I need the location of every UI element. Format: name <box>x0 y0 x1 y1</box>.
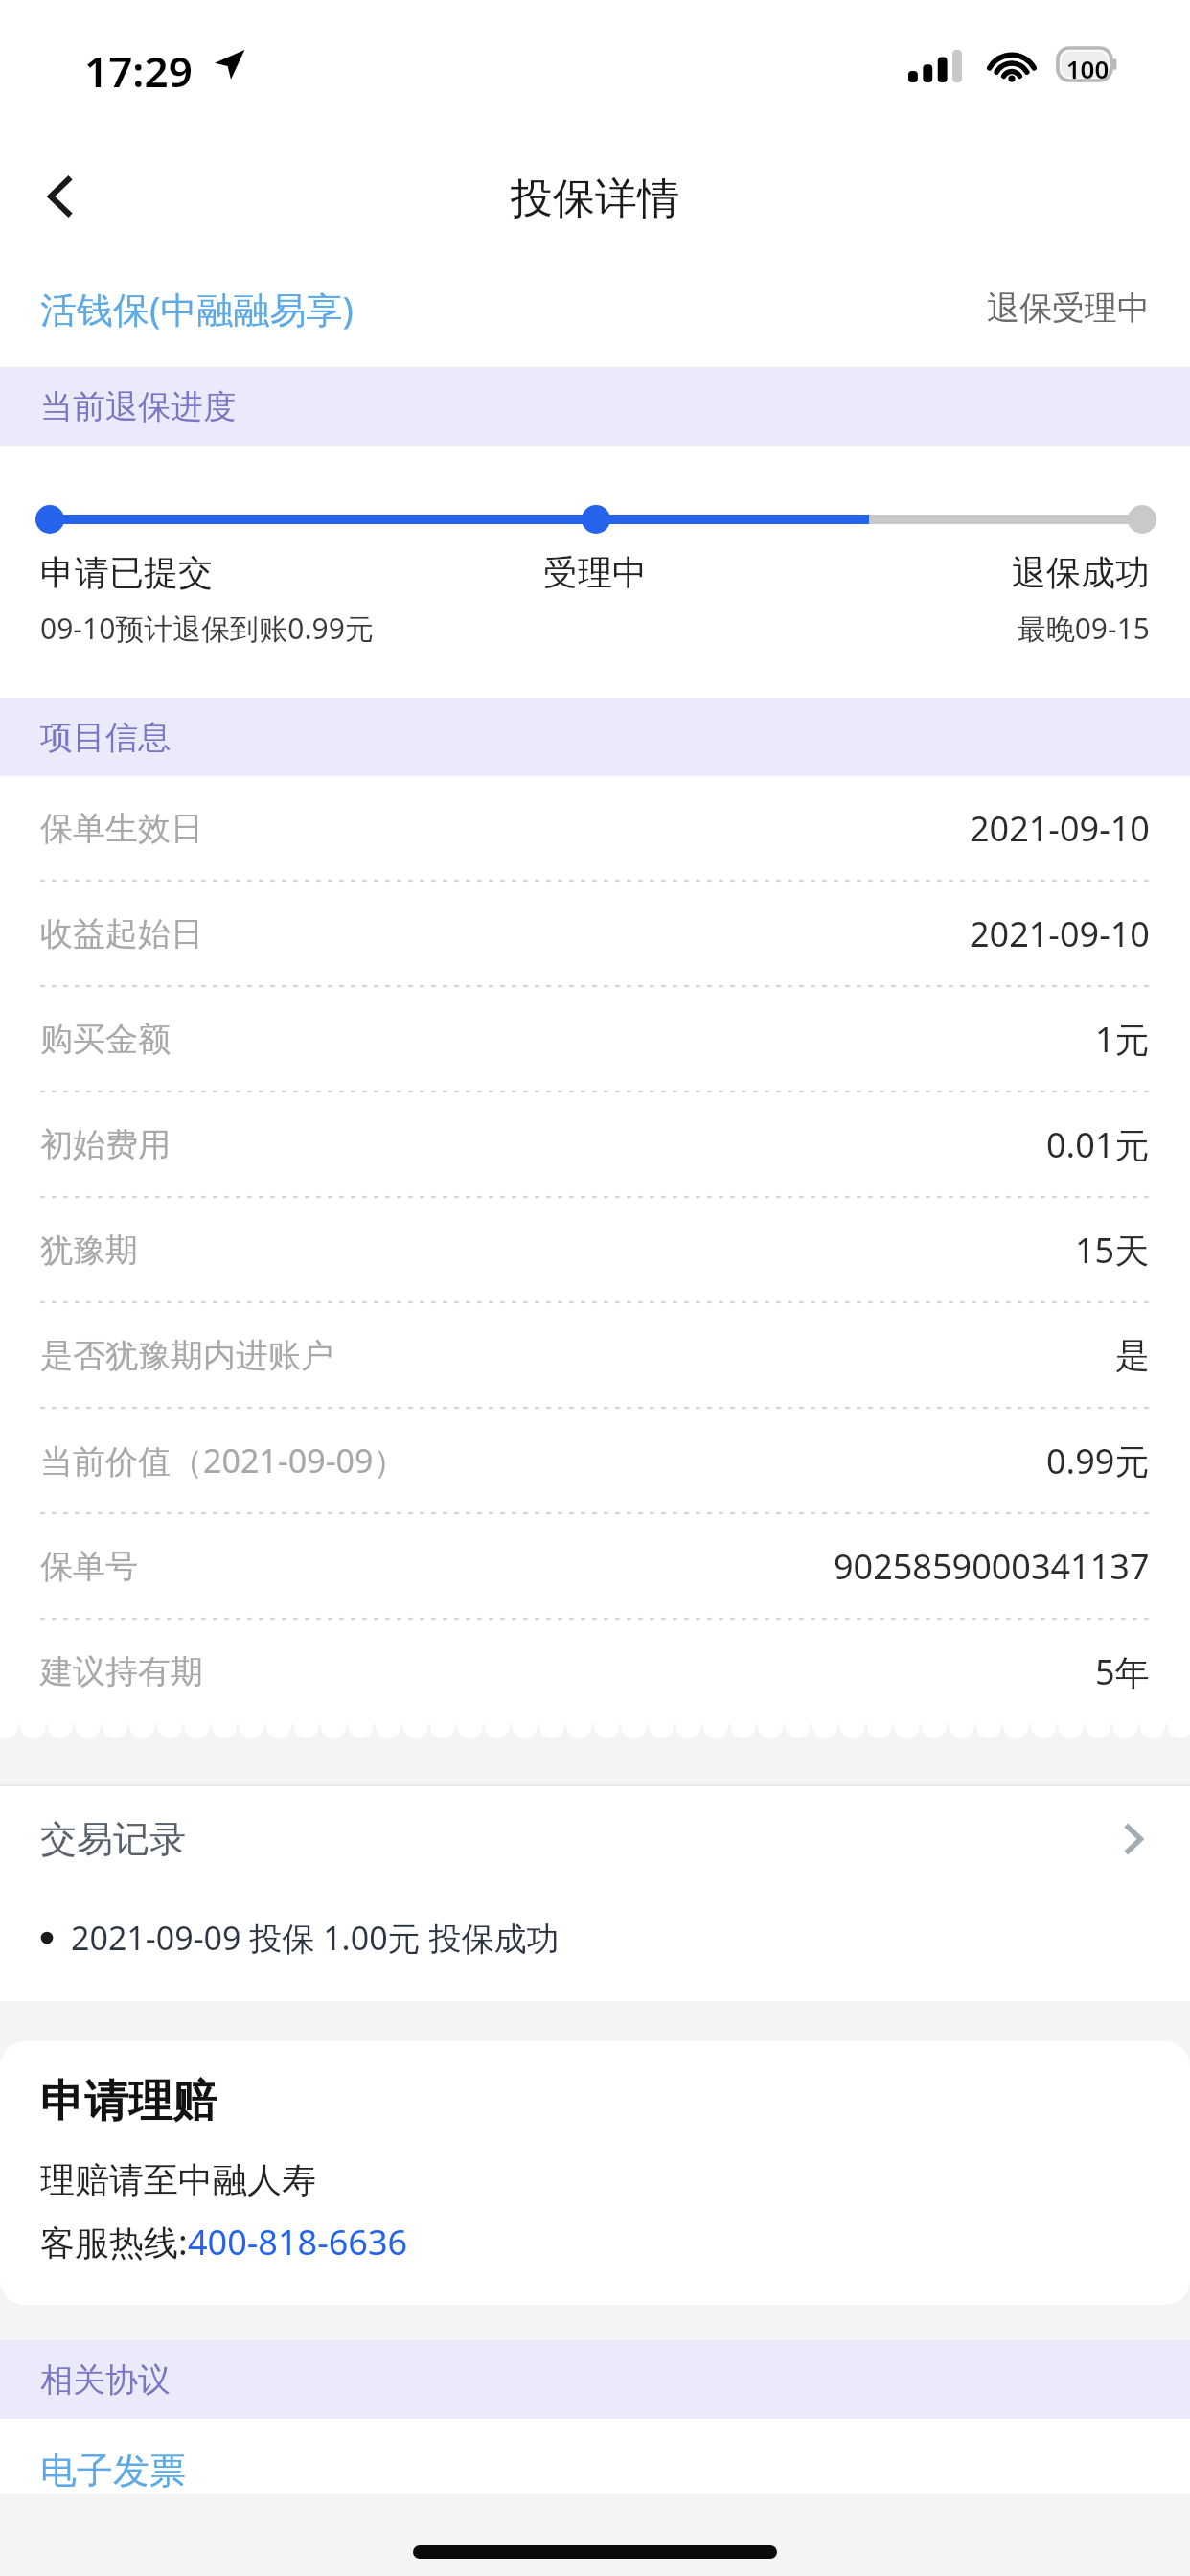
staticText: 当前价值（2021-09-09） <box>40 1438 406 1483</box>
staticText: 0.01元 <box>1046 1121 1150 1168</box>
staticText: 保单号 <box>40 1546 138 1587</box>
staticText: 400-818-6636 <box>188 2219 408 2265</box>
staticText: 犹豫期 <box>40 1230 138 1271</box>
staticText: 9025859000341137 <box>834 1543 1150 1590</box>
staticText: 交易记录 <box>40 1816 186 1862</box>
staticText: 购买金额 <box>40 1019 171 1060</box>
staticText: 09-10预计退保到账0.99元 <box>40 609 374 648</box>
button[interactable]: 电子发票 <box>40 2448 186 2494</box>
button[interactable]: Back <box>17 153 103 240</box>
staticText: 5年 <box>1095 1648 1150 1695</box>
button[interactable]: 400-818-6636 <box>188 2219 408 2265</box>
staticText: 项目信息 <box>40 717 171 758</box>
staticText: 活钱保(中融融易享) <box>40 284 354 333</box>
staticText: 收益起始日 <box>40 913 203 954</box>
staticText: 投保详情 <box>0 172 1190 225</box>
staticText: 是否犹豫期内进账户 <box>40 1335 333 1376</box>
staticText: 是 <box>1115 1334 1150 1377</box>
staticText: 相关协议 <box>40 2359 171 2401</box>
button[interactable]: 活钱保(中融融易享) <box>40 249 1150 367</box>
staticText: 申请已提交 <box>40 551 213 594</box>
staticText: 2021-09-09 投保 1.00元 投保成功 <box>71 1916 560 1960</box>
staticText: 理赔请至中融人寿 <box>40 2158 316 2201</box>
staticText: 建议持有期 <box>40 1651 203 1692</box>
staticText: 100 <box>1064 52 1111 85</box>
staticText: 1元 <box>1095 1016 1150 1063</box>
staticText: 退保受理中 <box>987 287 1150 329</box>
staticText: 申请理赔 <box>40 2074 217 2129</box>
button[interactable]: 交易记录 <box>40 1786 1150 1892</box>
staticText: 保单生效日 <box>40 808 203 849</box>
staticText: 17:29 <box>84 42 193 100</box>
staticText: 2021-09-10 <box>970 910 1150 957</box>
staticText: 2021-09-10 <box>970 805 1150 852</box>
staticText: 电子发票 <box>40 2448 186 2494</box>
staticText: 受理中 <box>0 551 1190 594</box>
staticText: 最晚09-15 <box>0 609 1150 648</box>
staticText: 当前退保进度 <box>40 386 236 427</box>
staticText: 15天 <box>1075 1227 1150 1274</box>
staticText: 初始费用 <box>40 1124 171 1165</box>
staticText: 退保成功 <box>0 551 1150 594</box>
staticText: 0.99元 <box>1046 1437 1150 1484</box>
staticText: 客服热线: <box>40 2219 188 2265</box>
